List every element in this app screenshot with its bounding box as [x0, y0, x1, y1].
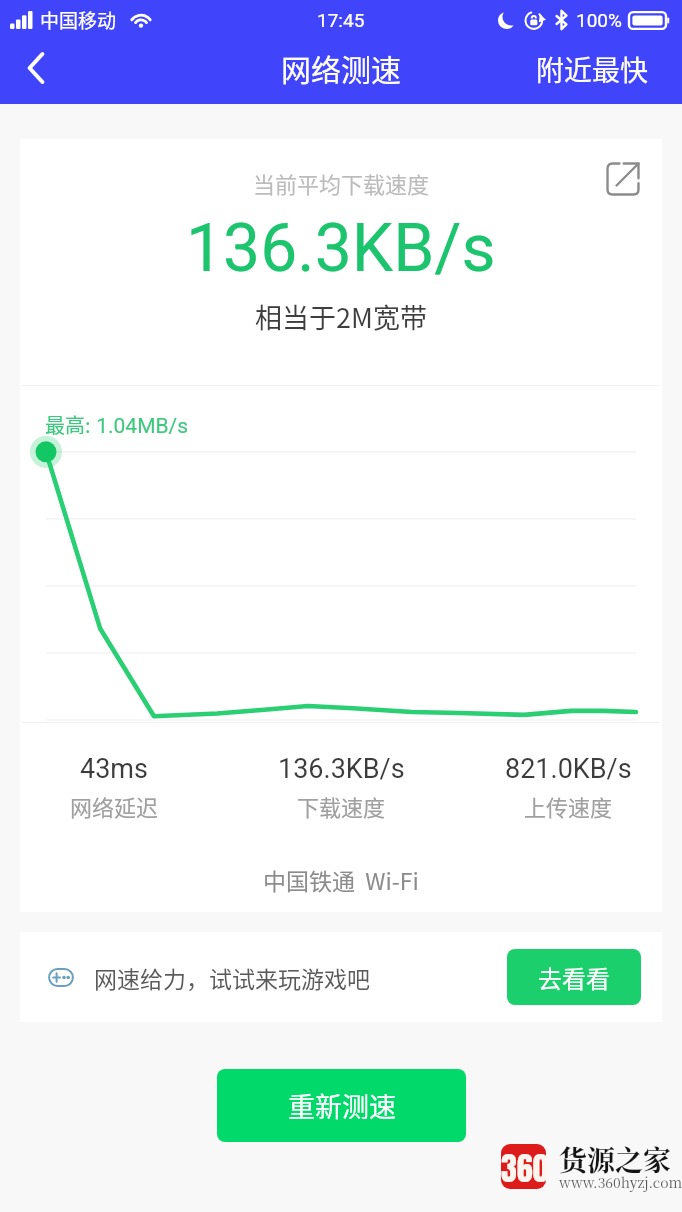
staticText: 360 [501, 1144, 546, 1189]
staticText: 当前平均下载速度 [253, 167, 430, 199]
staticText: 43ms [80, 753, 148, 785]
staticText: 网络延迟 [70, 790, 159, 822]
staticText: 附近最快 [536, 49, 649, 85]
staticText: 上传速度 [524, 790, 613, 822]
staticText: 最高: [45, 410, 91, 439]
staticText: 100% [576, 9, 622, 31]
staticText: 136.3KB/s [278, 753, 405, 785]
button[interactable]: 附近最快 [503, 35, 682, 99]
button[interactable]: 网速给力，试试来玩游戏吧 [20, 932, 662, 1022]
button[interactable]: Back [0, 40, 72, 104]
staticText: 821.0KB/s [505, 753, 632, 785]
staticText: 重新测速 [288, 1086, 396, 1125]
button[interactable]: 重新测速 [217, 1069, 466, 1142]
button[interactable]: Share [595, 151, 651, 207]
staticText: 17:45 [317, 9, 365, 31]
staticText: 1.04MB/s [91, 414, 189, 439]
staticText: 网速给力，试试来玩游戏吧 [94, 961, 370, 994]
staticText: 货源之家 [559, 1139, 672, 1179]
staticText: 去看看 [538, 960, 610, 995]
staticText: 中国移动 [40, 6, 117, 34]
staticText: 中国铁通 Wi-Fi [263, 863, 419, 896]
staticText: 下载速度 [297, 790, 386, 822]
staticText: www.360hyzj.com [559, 1172, 682, 1192]
button[interactable]: 去看看 [507, 949, 641, 1005]
staticText: 网络测速 [281, 46, 401, 89]
staticText: 相当于2M宽带 [255, 297, 427, 336]
staticText: 136.3KB/s [186, 210, 496, 287]
